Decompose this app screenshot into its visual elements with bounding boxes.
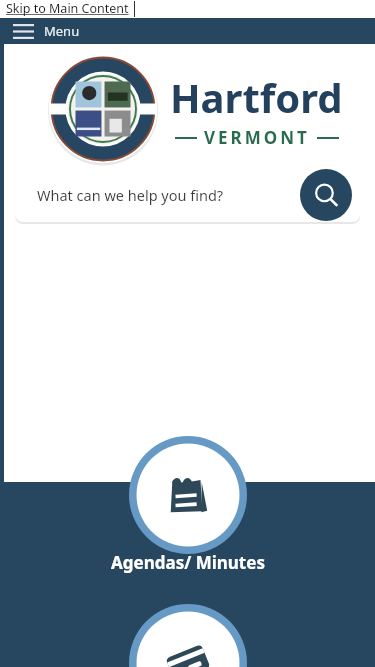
staticText: Hartford xyxy=(170,70,343,124)
button[interactable]: Menu xyxy=(0,18,92,44)
button[interactable]: Search xyxy=(300,169,352,221)
staticText: What can we help you find? xyxy=(37,185,224,205)
staticText: Menu xyxy=(44,22,80,40)
button[interactable]: Agendas/ Minutes xyxy=(111,551,265,574)
staticText: VERMONT xyxy=(204,126,310,149)
staticText: Skip to Main Content xyxy=(6,0,129,17)
button[interactable]: Agendas and Minutes xyxy=(129,436,247,554)
button[interactable]: Hartford Vermont home xyxy=(48,54,343,164)
button[interactable]: Pay Bills Online xyxy=(129,604,247,667)
button[interactable]: Skip to Main Content xyxy=(0,0,133,17)
button[interactable]: What can we help you find? xyxy=(15,167,360,222)
